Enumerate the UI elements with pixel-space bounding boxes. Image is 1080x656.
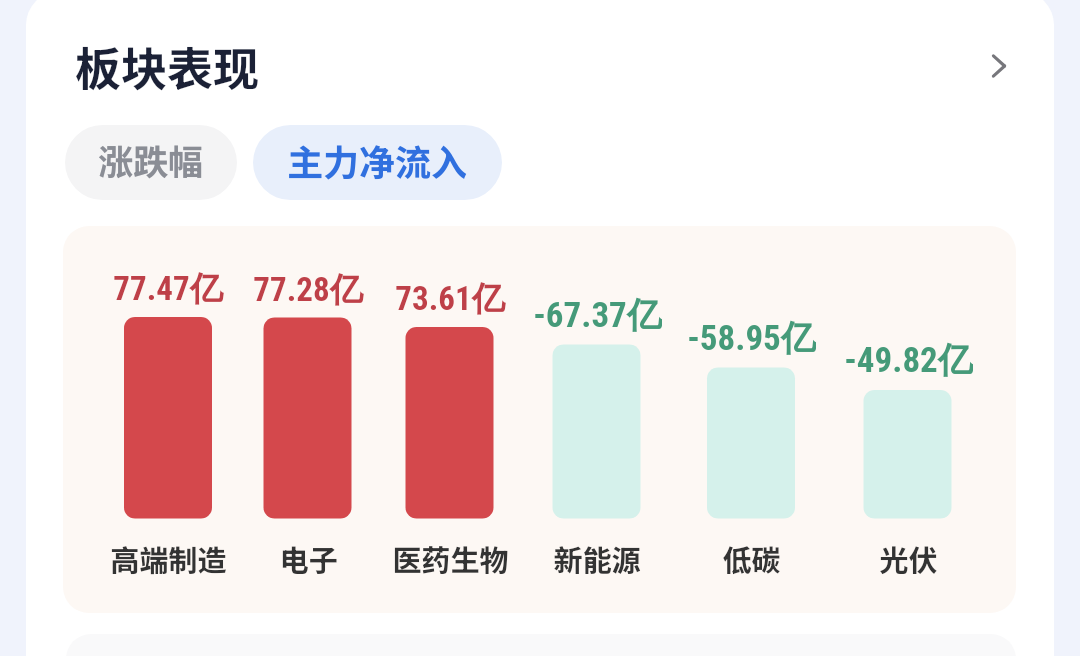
staticText: 77.28亿 xyxy=(253,269,363,311)
staticText: 医药生物 xyxy=(392,537,509,579)
other: 查看更多 xyxy=(967,34,1031,98)
staticText: 主力净流入 xyxy=(287,134,468,186)
staticText: -58.95亿 xyxy=(687,316,816,358)
staticText: 77.47亿 xyxy=(113,268,223,310)
button[interactable]: 涨跌幅 xyxy=(65,125,237,200)
button[interactable]: 板块表现 xyxy=(60,22,1031,110)
button[interactable]: 主力净流入 xyxy=(253,125,502,200)
staticText: 低碳 xyxy=(722,537,781,579)
staticText: 板块表现 xyxy=(75,33,259,100)
staticText: -49.82亿 xyxy=(844,338,973,380)
staticText: 电子 xyxy=(279,537,338,579)
staticText: -67.37亿 xyxy=(533,293,662,335)
staticText: 高端制造 xyxy=(110,537,227,579)
staticText: 新能源 xyxy=(553,537,641,579)
staticText: 73.61亿 xyxy=(395,278,505,320)
staticText: 涨跌幅 xyxy=(98,134,204,185)
staticText: 光伏 xyxy=(879,537,938,579)
